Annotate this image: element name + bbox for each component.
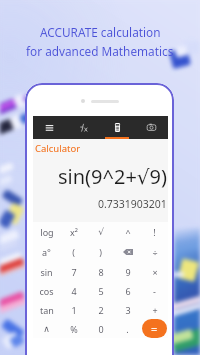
button[interactable]: 8 (87, 262, 114, 281)
staticText: a° (42, 246, 51, 258)
staticText: ^ (125, 226, 131, 238)
button[interactable]: 5 (87, 281, 114, 300)
button[interactable]: √ (87, 222, 114, 242)
staticText: . (126, 323, 129, 335)
button[interactable]: cos (33, 281, 60, 300)
staticText: 0 (98, 323, 104, 335)
staticText: 6 (125, 285, 131, 297)
staticText: ) (99, 246, 102, 258)
staticText: x² (70, 226, 78, 238)
button[interactable]: ÷ (141, 242, 168, 262)
button[interactable]: ) (87, 242, 114, 262)
button[interactable]: + (141, 300, 168, 319)
staticText: sin(9^2+√9) (58, 163, 168, 190)
staticText: + (152, 304, 158, 316)
button[interactable]: % (60, 319, 87, 338)
staticText: - (153, 285, 156, 297)
button[interactable]: 1 (60, 300, 87, 319)
staticText: sin (40, 266, 53, 278)
staticText: 4 (71, 285, 77, 297)
staticText: ∧ (43, 324, 50, 334)
button[interactable]: × (141, 262, 168, 281)
staticText: 9 (125, 266, 131, 278)
staticText: 5 (98, 285, 104, 297)
button[interactable]: Calculator (100, 116, 134, 139)
staticText: ! (153, 226, 156, 238)
button[interactable]: 6 (114, 281, 141, 300)
button[interactable]: sin (33, 262, 60, 281)
button[interactable]: 7 (60, 262, 87, 281)
staticText: ACCURATE calculation (40, 24, 161, 40)
staticText: Calculator (35, 142, 81, 155)
button[interactable]: . (114, 319, 141, 338)
staticText: = (151, 321, 158, 336)
button[interactable]: 0 (87, 319, 114, 338)
staticText: % (70, 323, 78, 335)
button[interactable]: 2 (87, 300, 114, 319)
staticText: × (152, 266, 158, 278)
staticText: 0.7331903201 (98, 197, 167, 211)
button[interactable]: 4 (60, 281, 87, 300)
staticText: tan (40, 304, 54, 316)
button[interactable]: ∧ (33, 319, 60, 338)
staticText: for advanced Mathematics (26, 43, 174, 59)
button[interactable]: x² (60, 222, 87, 242)
staticText: 2 (98, 304, 104, 316)
button[interactable]: ^ (114, 222, 141, 242)
button[interactable]: 3 (114, 300, 141, 319)
button[interactable]: Camera (134, 116, 168, 139)
button[interactable]: 9 (114, 262, 141, 281)
button[interactable]: tan (33, 300, 60, 319)
staticText: 7 (71, 266, 77, 278)
staticText: 3 (125, 304, 131, 316)
button[interactable]: a° (33, 242, 60, 262)
button[interactable]: - (141, 281, 168, 300)
staticText: 8 (98, 266, 104, 278)
staticText: ÷ (152, 246, 158, 258)
button[interactable]: ! (141, 222, 168, 242)
button[interactable]: Delete (114, 242, 141, 262)
button[interactable]: Functions (66, 116, 100, 139)
button[interactable]: log (33, 222, 60, 242)
button[interactable]: ( (60, 242, 87, 262)
other: Delete (123, 249, 133, 255)
button[interactable]: = (141, 319, 168, 338)
staticText: 1 (71, 304, 77, 316)
staticText: cos (39, 285, 54, 297)
staticText: log (40, 226, 54, 238)
staticText: ( (72, 246, 75, 258)
button[interactable]: Menu (33, 116, 66, 139)
staticText: √ (98, 227, 104, 237)
